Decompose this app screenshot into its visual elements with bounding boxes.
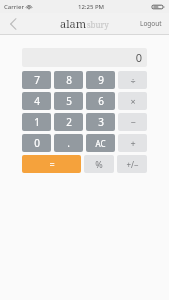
staticText: 1 [34,115,40,129]
staticText: 9 [98,73,104,87]
staticText: 0 [135,50,142,65]
button[interactable]: % [84,155,114,173]
button[interactable]: × [118,92,147,110]
button[interactable]: − [118,113,147,131]
button[interactable]: Back [0,13,26,34]
button[interactable]: 5 [54,92,83,110]
staticText: % [95,158,103,170]
staticText: . [67,136,70,150]
button[interactable]: 7 [22,71,51,89]
staticText: alam [60,16,87,31]
staticText: sbury [87,19,109,30]
button[interactable]: 0 [22,134,51,152]
staticText: 12:25 PM [78,3,105,11]
button[interactable]: 1 [22,113,51,131]
staticText: 2 [66,115,72,129]
staticText: − [130,116,136,128]
staticText: ÷ [130,74,136,86]
button[interactable]: AC [86,134,115,152]
staticText: AC [95,138,106,149]
staticText: × [130,95,136,107]
staticText: 7 [34,73,40,87]
button[interactable]: 3 [86,113,115,131]
staticText: 6 [98,94,104,108]
button[interactable]: ÷ [118,71,147,89]
button[interactable]: 8 [54,71,83,89]
button[interactable]: 4 [22,92,51,110]
button[interactable]: . [54,134,83,152]
button[interactable]: +/− [117,155,147,173]
staticText: +/− [126,159,139,170]
button[interactable]: = [22,155,81,173]
button[interactable]: + [118,134,147,152]
staticText: 4 [34,94,40,108]
staticText: 5 [66,94,72,108]
staticText: Logout [140,19,162,28]
staticText: = [49,158,55,170]
button[interactable]: 6 [86,92,115,110]
button[interactable]: 9 [86,71,115,89]
button[interactable]: 2 [54,113,83,131]
staticText: 0 [34,136,40,150]
staticText: + [130,137,136,149]
staticText: 3 [98,115,104,129]
staticText: Carrier [4,3,24,11]
staticText: 8 [66,73,72,87]
button[interactable]: Logout [133,13,169,34]
